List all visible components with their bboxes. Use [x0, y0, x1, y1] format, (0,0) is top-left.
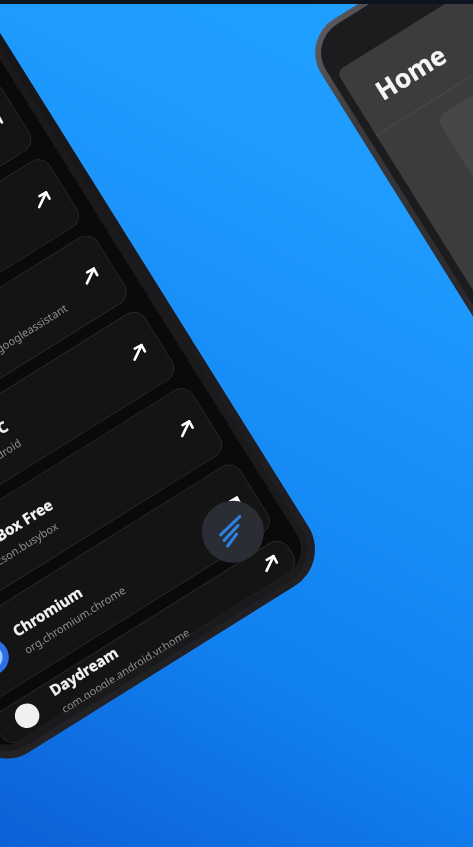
staticText: Home [368, 36, 453, 107]
other: Open Daydream [257, 550, 284, 577]
button[interactable]: Sort and filter [190, 489, 276, 574]
button[interactable]: BusyBox Free [0, 383, 227, 631]
staticText: Daydream [46, 642, 121, 700]
staticText: BusyBox Free [0, 494, 56, 564]
staticText: BT Remote PC [0, 416, 12, 488]
button[interactable]: BT Remote PC [0, 307, 180, 555]
staticText: org.chromium.chrome [21, 582, 128, 657]
staticText: com.google.android.apps.googleassistant [0, 300, 70, 428]
staticText: stericson.busybox [0, 518, 61, 580]
button[interactable]: Chromium [0, 459, 275, 708]
other: Open [0, 110, 9, 137]
staticText: Chromium [8, 582, 86, 641]
staticText: cz.rotooverc.android [0, 435, 24, 504]
button[interactable]: App Checker [0, 154, 84, 402]
other: Open Chromium [220, 491, 248, 519]
other: Open BusyBox Free [172, 415, 200, 443]
button[interactable] [436, 0, 473, 245]
other: Open BT Remote PC [125, 339, 152, 366]
staticText: com.google.android.vr.home [58, 624, 191, 713]
button[interactable]: Open [0, 78, 37, 326]
other: Open App Checker [29, 186, 57, 214]
other: Open Assistant [77, 262, 105, 290]
button[interactable]: Assistant [0, 230, 132, 479]
button[interactable]: Daydream [0, 536, 300, 748]
